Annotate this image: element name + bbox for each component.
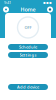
staticText: ▪▪▪ [43, 0, 52, 5]
button[interactable]: Settings [47, 6, 53, 12]
button[interactable]: Schedule [8, 44, 48, 50]
staticText: 9:41 [4, 0, 11, 5]
button[interactable]: Settings [8, 52, 48, 58]
staticText: Home [20, 6, 35, 13]
button[interactable]: Add device [8, 84, 48, 90]
staticText: Add device [17, 84, 39, 90]
staticText: Settings [19, 52, 36, 58]
staticText: OFF [24, 25, 31, 30]
staticText: Schedule [19, 44, 37, 50]
button[interactable]: Profile [3, 6, 9, 12]
